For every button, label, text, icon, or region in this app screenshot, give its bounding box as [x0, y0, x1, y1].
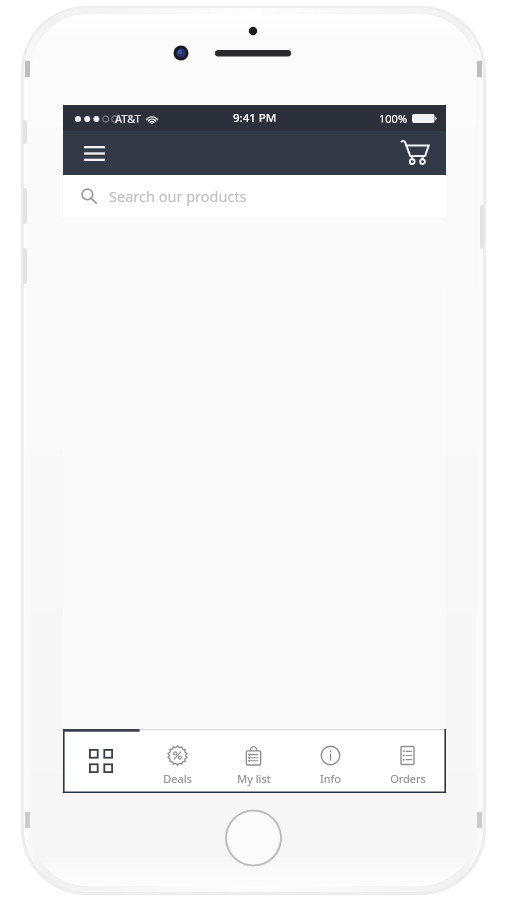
staticText: 100%	[379, 111, 408, 126]
button[interactable]: Info	[292, 729, 369, 793]
staticText: Orders	[390, 771, 426, 786]
button[interactable]: Shopping cart	[396, 134, 434, 172]
button[interactable]: Menu	[77, 136, 111, 170]
staticText: My list	[237, 771, 271, 786]
staticText: Info	[320, 771, 341, 786]
button[interactable]: Orders	[369, 729, 446, 793]
staticText: Deals	[163, 771, 192, 786]
button[interactable]: My list	[215, 729, 292, 793]
staticText: 9:41 PM	[233, 110, 277, 126]
staticText: AT&T	[115, 111, 141, 126]
button[interactable]: Browse products	[63, 729, 139, 793]
button[interactable]: Deals	[139, 729, 215, 793]
staticText: Search our products	[109, 186, 247, 206]
button[interactable]: Search our products	[63, 175, 446, 217]
